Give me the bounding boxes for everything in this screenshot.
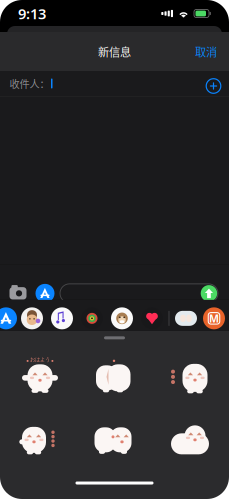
staticText: 新信息 bbox=[98, 43, 131, 60]
button[interactable]: 取消 bbox=[189, 37, 223, 66]
staticText: おはよう bbox=[30, 356, 50, 363]
button[interactable]: Apps bbox=[35, 284, 54, 303]
staticText: M bbox=[209, 311, 219, 325]
staticText: 收件人： bbox=[9, 76, 49, 91]
button[interactable]: Camera bbox=[8, 285, 27, 302]
button[interactable]: Message field bbox=[60, 284, 218, 303]
button[interactable]: Sticker: couple bbox=[82, 413, 144, 465]
button[interactable]: Memoji bbox=[21, 307, 43, 329]
button[interactable]: Sticker: good morning bbox=[9, 351, 71, 403]
button[interactable]: App Store bbox=[0, 307, 17, 329]
button[interactable]: Sticker pack bbox=[175, 307, 197, 329]
button[interactable]: Sticker: excited bbox=[9, 413, 71, 465]
button[interactable]: Sticker: shy bbox=[159, 351, 221, 403]
staticText: 9:13 bbox=[18, 4, 46, 23]
button[interactable]: Sticker: resting bbox=[159, 413, 221, 465]
button[interactable]: Stickers bbox=[111, 307, 133, 329]
button[interactable]: Sticker: back to back bbox=[82, 351, 144, 403]
button[interactable]: Add contact bbox=[204, 77, 222, 95]
staticText: 取消 bbox=[195, 43, 217, 60]
button[interactable]: More apps bbox=[203, 307, 225, 329]
button[interactable]: Music bbox=[51, 307, 73, 329]
button[interactable]: Photos bbox=[81, 307, 103, 329]
button[interactable]: Digital Touch bbox=[141, 307, 163, 329]
